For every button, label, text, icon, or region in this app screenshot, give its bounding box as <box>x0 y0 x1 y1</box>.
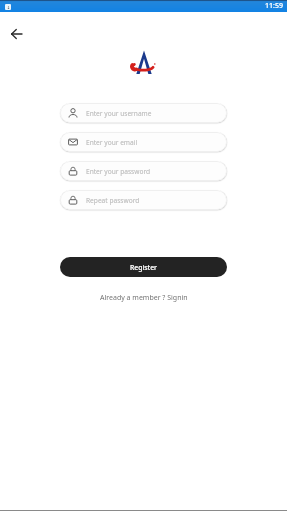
button[interactable]: Register <box>60 257 227 277</box>
button[interactable]: Repeat password <box>60 190 227 210</box>
button[interactable]: Already a member ? Signin <box>96 291 192 305</box>
staticText: Enter your username <box>86 109 152 118</box>
staticText: Already a member ? Signin <box>100 293 188 303</box>
staticText: 11:59 <box>265 1 283 11</box>
staticText: Register <box>130 263 157 272</box>
button[interactable]: Enter your password <box>60 161 227 181</box>
staticText: Repeat password <box>86 196 140 205</box>
button[interactable]: Enter your username <box>60 103 227 123</box>
button[interactable]: Enter your email <box>60 132 227 152</box>
staticText: Enter your password <box>86 167 151 176</box>
staticText: Enter your email <box>86 138 138 147</box>
button[interactable]: Back <box>4 22 28 46</box>
